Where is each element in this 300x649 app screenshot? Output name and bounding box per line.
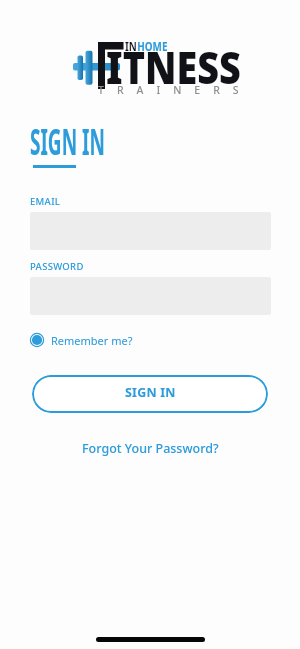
staticText: ITNESS — [106, 36, 241, 97]
button[interactable]: Forgot Your Password? — [82, 440, 219, 457]
button[interactable]: Remember me? — [28, 331, 133, 349]
staticText: PASSWORD — [30, 260, 84, 273]
staticText: HOME — [137, 38, 168, 54]
staticText: EMAIL — [30, 195, 61, 208]
staticText: SIGN IN — [30, 117, 105, 166]
staticText: SIGN IN — [125, 384, 176, 401]
staticText: TRAINERS — [98, 83, 252, 97]
staticText: IN — [125, 38, 137, 54]
button[interactable]: SIGN IN — [32, 375, 268, 413]
staticText: Remember me? — [51, 333, 133, 348]
